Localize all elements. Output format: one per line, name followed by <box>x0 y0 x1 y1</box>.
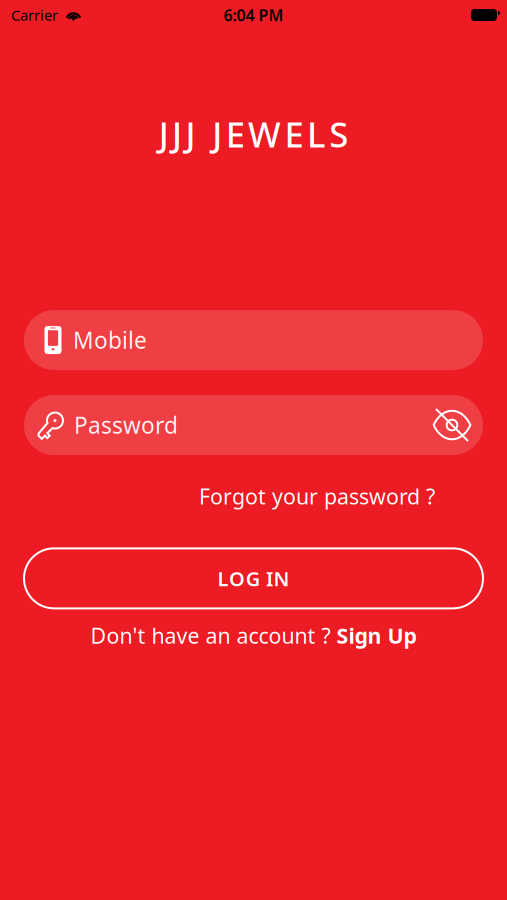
staticText: O <box>229 565 245 592</box>
staticText: Forgot your password ? <box>199 482 435 510</box>
staticText: J <box>185 111 195 157</box>
staticText: Sign Up <box>336 621 416 649</box>
button[interactable]: Don't have an account ? <box>90 620 416 650</box>
staticText: S <box>329 111 348 157</box>
staticText: E <box>284 111 303 157</box>
staticText: Don't have an account ? <box>90 621 330 649</box>
staticText: J <box>212 111 222 157</box>
staticText: J <box>172 111 182 157</box>
staticText: W <box>248 111 281 157</box>
staticText: 6:04 PM <box>223 4 283 26</box>
button[interactable]: Show password <box>433 411 471 439</box>
staticText: J <box>159 111 169 157</box>
staticText: L <box>307 111 326 157</box>
staticText: Mobile <box>73 325 147 355</box>
staticText: Password <box>74 410 178 440</box>
staticText: I <box>266 565 273 592</box>
button[interactable]: Forgot your password ? <box>199 482 435 510</box>
staticText: N <box>273 565 289 592</box>
button[interactable]: L <box>24 548 483 608</box>
staticText: L <box>217 565 228 592</box>
staticText: Carrier <box>11 5 58 25</box>
staticText: G <box>246 565 261 592</box>
staticText: E <box>226 111 245 157</box>
